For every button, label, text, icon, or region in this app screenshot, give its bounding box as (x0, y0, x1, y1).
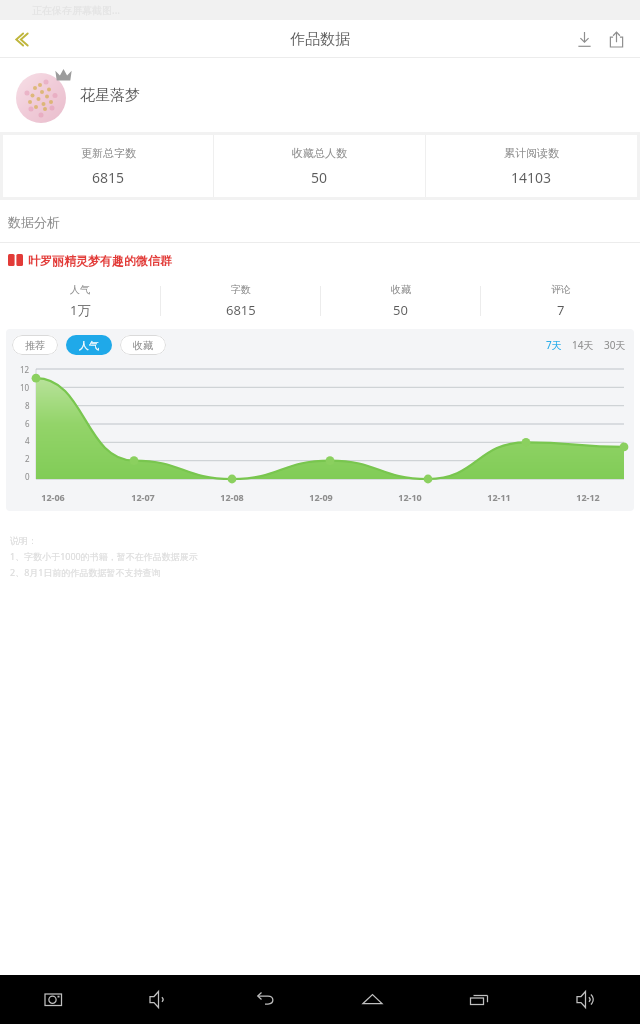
staticText: 10 (20, 382, 30, 393)
staticText: 30天 (604, 338, 626, 352)
staticText: 收藏 (391, 283, 411, 296)
staticText: 推荐 (25, 339, 45, 352)
staticText: 4 (25, 435, 30, 446)
staticText: 1万 (70, 301, 91, 319)
staticText: 12-08 (220, 491, 244, 503)
staticText: 花星落梦 (80, 86, 140, 105)
button[interactable]: 叶罗丽精灵梦有趣的微信群 (0, 243, 640, 277)
staticText: 6 (25, 418, 30, 429)
button[interactable]: 收藏总人数 (214, 135, 425, 197)
button[interactable]: 人气 (0, 277, 160, 325)
staticText: 字数 (231, 283, 251, 296)
button[interactable]: Volume down (106, 975, 212, 1024)
staticText: 14天 (572, 338, 594, 352)
staticText: 0 (25, 471, 30, 482)
staticText: 人气 (70, 283, 90, 296)
button[interactable]: 收藏 (120, 335, 166, 355)
staticText: 说明： (10, 535, 37, 546)
staticText: 12-11 (487, 491, 511, 503)
button[interactable]: 7天 (544, 334, 564, 356)
button[interactable]: Home (319, 975, 426, 1024)
staticText: 更新总字数 (81, 146, 136, 160)
button[interactable]: Recents (426, 975, 533, 1024)
staticText: 7 (557, 301, 565, 319)
staticText: 12-09 (309, 491, 333, 503)
staticText: 12-07 (131, 491, 155, 503)
button[interactable]: Share (600, 23, 632, 55)
staticText: 正在保存屏幕截图... (32, 3, 121, 17)
button[interactable]: Volume up (533, 975, 640, 1024)
button[interactable]: Back (212, 975, 319, 1024)
staticText: 人气 (79, 339, 99, 352)
staticText: 12 (20, 364, 30, 375)
staticText: 2、8月1日前的作品数据暂不支持查询 (10, 566, 161, 578)
button[interactable]: 14天 (570, 334, 596, 356)
staticText: 评论 (551, 283, 571, 296)
button[interactable]: 30天 (602, 334, 628, 356)
staticText: 14103 (511, 168, 552, 187)
staticText: 6815 (226, 301, 256, 319)
staticText: 1、字数小于1000的书籍，暂不在作品数据展示 (10, 550, 198, 562)
staticText: 50 (393, 301, 408, 319)
button[interactable]: 字数 (161, 277, 320, 325)
staticText: 收藏总人数 (292, 146, 347, 160)
staticText: 收藏 (133, 339, 153, 352)
staticText: 12-06 (41, 491, 65, 503)
staticText: 2 (25, 453, 30, 464)
staticText: 数据分析 (8, 214, 60, 230)
staticText: 叶罗丽精灵梦有趣的微信群 (28, 253, 172, 268)
button[interactable]: 人气 (66, 335, 112, 355)
staticText: 6815 (92, 168, 125, 187)
staticText: 12-10 (398, 491, 422, 503)
button[interactable]: 更新总字数 (3, 135, 213, 197)
button[interactable]: 累计阅读数 (426, 135, 637, 197)
staticText: 50 (311, 168, 328, 187)
staticText: 12-12 (576, 491, 600, 503)
staticText: 7天 (546, 338, 562, 352)
button[interactable]: Download (568, 23, 600, 55)
staticText: 8 (25, 400, 30, 411)
button[interactable]: 花星落梦 (0, 58, 640, 132)
staticText: 累计阅读数 (504, 146, 559, 160)
button[interactable]: Screenshot (0, 975, 106, 1024)
staticText: 作品数据 (290, 30, 350, 49)
button[interactable]: 推荐 (12, 335, 58, 355)
button[interactable]: 评论 (481, 277, 640, 325)
button[interactable]: Back (0, 20, 46, 58)
button[interactable]: 收藏 (321, 277, 480, 325)
